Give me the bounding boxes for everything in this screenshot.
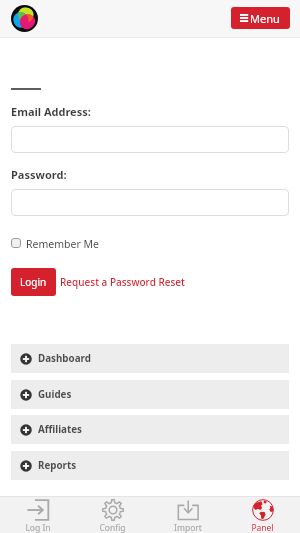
- staticText: Affiliates: [38, 423, 83, 436]
- other: Config: [102, 499, 124, 521]
- button[interactable]: Request a Password Reset: [60, 275, 185, 289]
- other: Import: [177, 499, 199, 521]
- staticText: Panel: [251, 522, 274, 533]
- staticText: Import: [174, 522, 202, 533]
- button[interactable]: Affiliates: [11, 415, 289, 444]
- staticText: Guides: [38, 388, 72, 401]
- button[interactable]: [11, 189, 289, 216]
- staticText: Password:: [11, 167, 67, 182]
- staticText: Menu: [250, 11, 280, 26]
- button[interactable]: Config: [75, 497, 150, 533]
- other: Log In: [27, 499, 49, 521]
- staticText: Config: [99, 522, 126, 533]
- staticText: Log In: [25, 522, 51, 533]
- other: Logo: [11, 5, 38, 32]
- staticText: Remember Me: [26, 237, 99, 249]
- staticText: Reports: [38, 459, 77, 472]
- other: Panel: [252, 499, 274, 521]
- button[interactable]: Log In: [0, 497, 75, 533]
- button[interactable]: Menu: [231, 7, 290, 29]
- staticText: Login: [20, 275, 47, 289]
- staticText: Email Address:: [11, 104, 91, 119]
- button[interactable]: [11, 126, 289, 153]
- staticText: Dashboard: [38, 352, 91, 365]
- button[interactable]: Guides: [11, 380, 289, 409]
- button[interactable]: Reports: [11, 451, 289, 480]
- button[interactable]: Panel: [225, 497, 300, 533]
- button[interactable]: Remember Me: [11, 237, 99, 249]
- button[interactable]: Login: [11, 268, 56, 296]
- button[interactable]: Dashboard: [11, 344, 289, 373]
- button[interactable]: Import: [150, 497, 225, 533]
